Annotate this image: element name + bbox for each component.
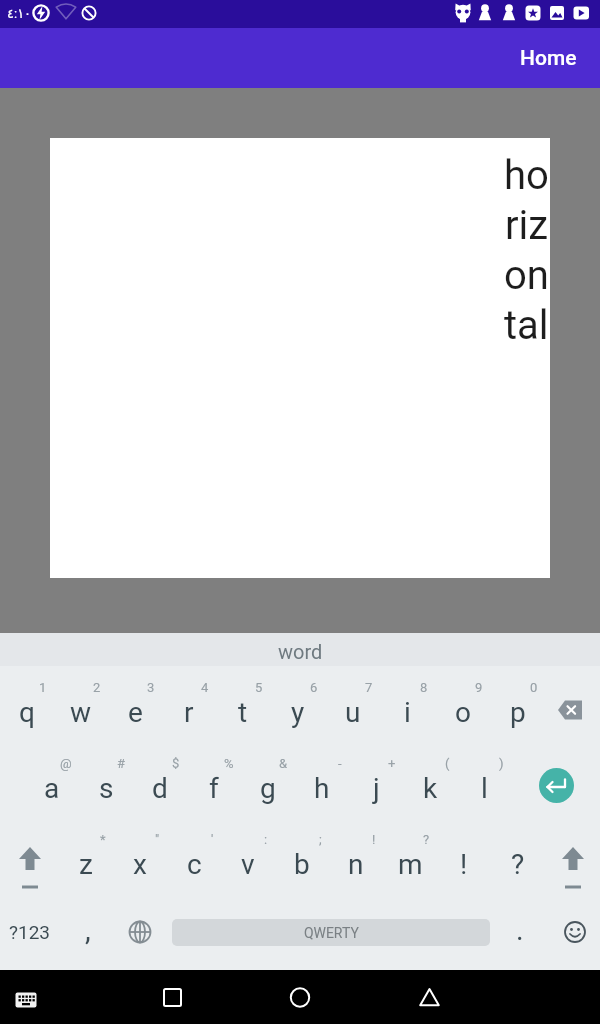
button[interactable]: 4 (162, 666, 216, 742)
staticText: i (404, 696, 411, 729)
button[interactable]: Home (520, 46, 577, 71)
staticText: ! (372, 832, 376, 847)
button[interactable]: # (79, 742, 133, 818)
staticText: o (455, 696, 471, 729)
staticText: * (100, 832, 106, 847)
staticText: e (128, 696, 143, 729)
staticText: 3 (147, 680, 155, 695)
staticText: 1 (39, 680, 47, 695)
button[interactable]: 1 (0, 666, 54, 742)
button[interactable] (539, 768, 574, 803)
staticText: 0 (530, 680, 538, 695)
staticText: l (481, 772, 488, 805)
staticText: s (99, 772, 114, 805)
staticText: g (260, 772, 276, 805)
staticText: 2 (93, 680, 101, 695)
staticText: q (19, 696, 35, 729)
staticText: t (238, 696, 248, 729)
button[interactable]: + (349, 742, 403, 818)
button[interactable]: 6 (270, 666, 325, 742)
button[interactable]: ( (403, 742, 457, 818)
staticText: + (388, 756, 396, 771)
button[interactable]: : (221, 818, 275, 894)
button[interactable] (116, 894, 164, 970)
staticText: u (345, 696, 361, 729)
staticText: v (241, 848, 255, 881)
staticText: x (133, 848, 147, 881)
button[interactable]: % (187, 742, 241, 818)
staticText: ?123 (9, 921, 51, 943)
staticText: @ (60, 756, 72, 771)
button[interactable]: 2 (54, 666, 108, 742)
staticText: f (209, 772, 219, 805)
staticText: $ (172, 756, 180, 771)
button[interactable]: @ (25, 742, 79, 818)
staticText: 6 (310, 680, 318, 695)
staticText: ! (460, 848, 468, 881)
staticText: ? (423, 832, 430, 847)
staticText: ho (504, 152, 549, 199)
staticText: h (314, 772, 330, 805)
staticText: z (79, 848, 93, 881)
button[interactable]: - (295, 742, 349, 818)
staticText: 7 (365, 680, 373, 695)
staticText: b (294, 848, 310, 881)
button[interactable] (545, 818, 600, 894)
staticText: " (155, 832, 160, 847)
button[interactable]: ; (275, 818, 329, 894)
staticText: word (278, 640, 323, 663)
staticText: a (44, 772, 60, 805)
button[interactable]: " (113, 818, 167, 894)
button[interactable]: . (490, 894, 550, 970)
staticText: & (279, 756, 288, 771)
staticText: % (224, 756, 234, 771)
button[interactable]: ?123 (0, 894, 60, 970)
button[interactable]: * (59, 818, 113, 894)
staticText: , (85, 913, 91, 947)
button[interactable] (0, 970, 54, 1024)
button[interactable]: ? (491, 818, 545, 894)
staticText: 8 (420, 680, 428, 695)
staticText: ) (499, 756, 504, 771)
staticText: w (70, 696, 92, 729)
staticText: 9 (475, 680, 483, 695)
button[interactable]: ! (329, 818, 383, 894)
button[interactable]: 3 (108, 666, 162, 742)
staticText: on (504, 252, 549, 299)
button[interactable]: 8 (380, 666, 435, 742)
button[interactable]: ' (167, 818, 221, 894)
staticText: # (117, 756, 126, 771)
staticText: : (264, 832, 268, 847)
button[interactable]: ? (383, 818, 437, 894)
staticText: k (423, 772, 438, 805)
staticText: j (373, 772, 380, 805)
staticText: tal (504, 302, 549, 349)
button[interactable] (298, 970, 378, 1024)
button[interactable]: ) (457, 742, 511, 818)
button[interactable] (545, 666, 600, 742)
button[interactable]: , (60, 894, 116, 970)
staticText: c (187, 848, 202, 881)
button[interactable]: 9 (435, 666, 490, 742)
staticText: r (184, 696, 194, 729)
button[interactable]: 0 (490, 666, 545, 742)
staticText: ' (211, 832, 214, 847)
button[interactable]: 7 (325, 666, 380, 742)
staticText: . (516, 913, 524, 947)
button[interactable] (0, 818, 59, 894)
button[interactable]: & (241, 742, 295, 818)
button[interactable]: word (0, 633, 600, 666)
staticText: m (398, 848, 423, 881)
staticText: QWERTY (304, 925, 359, 941)
button[interactable] (550, 894, 600, 970)
button[interactable]: $ (133, 742, 187, 818)
staticText: ( (445, 756, 450, 771)
button[interactable] (136, 970, 216, 1024)
staticText: ? (511, 848, 525, 881)
staticText: n (348, 848, 364, 881)
staticText: 5 (255, 680, 263, 695)
button[interactable]: ! (437, 818, 491, 894)
button[interactable]: QWERTY (172, 894, 490, 970)
button[interactable]: 5 (216, 666, 270, 742)
